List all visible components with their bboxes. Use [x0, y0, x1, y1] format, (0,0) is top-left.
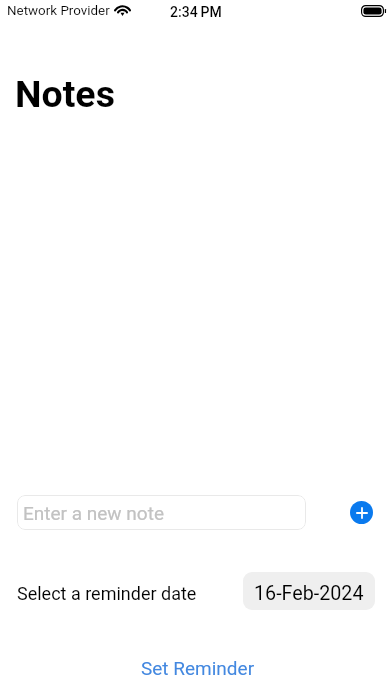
staticText: Enter a new note [23, 502, 164, 524]
other: Battery full [361, 5, 386, 17]
staticText: 2:34 PM [170, 4, 222, 20]
other: Wi-Fi [113, 3, 132, 15]
button[interactable]: Add note [350, 501, 373, 524]
staticText: Select a reminder date [17, 583, 197, 604]
staticText: Notes [15, 72, 115, 116]
staticText: 16-Feb-2024 [254, 582, 364, 605]
staticText: Set Reminder [141, 657, 255, 679]
button[interactable]: Set Reminder [0, 655, 392, 681]
staticText: Network Provider [7, 3, 110, 19]
button[interactable]: 16-Feb-2024 [243, 572, 375, 610]
button[interactable]: Enter a new note [17, 495, 306, 530]
